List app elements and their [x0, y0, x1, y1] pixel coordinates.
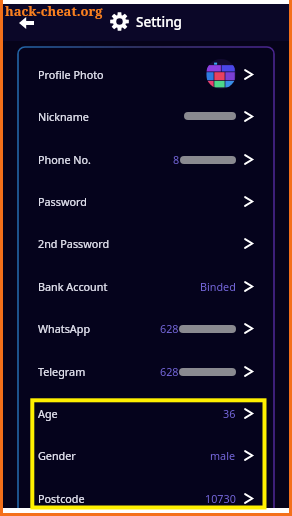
staticText: 628 [160, 321, 179, 336]
button[interactable]: Age [18, 392, 274, 434]
staticText: 10730 [205, 491, 236, 506]
button[interactable]: Password [18, 180, 274, 222]
staticText: Phone No. [38, 152, 91, 167]
button[interactable]: Nickname [18, 95, 274, 137]
button[interactable]: Phone No. [18, 138, 274, 180]
staticText: 628 [160, 364, 179, 379]
staticText: Setting [136, 13, 182, 31]
button[interactable]: Postcode [18, 477, 274, 508]
button[interactable]: Profile Photo [18, 53, 274, 95]
staticText: Telegram [38, 364, 86, 379]
staticText: Postcode [38, 491, 85, 506]
staticText: 36 [223, 406, 236, 421]
staticText: WhatsApp [38, 321, 91, 336]
button[interactable]: Bank Account [18, 265, 274, 307]
staticText: 8 [173, 152, 180, 167]
button[interactable]: Gender [18, 434, 274, 476]
button[interactable]: Telegram [18, 350, 274, 392]
staticText: Age [38, 406, 58, 421]
staticText: Password [38, 194, 87, 209]
staticText: Gender [38, 448, 76, 463]
button[interactable]: 2nd Password [18, 222, 274, 264]
staticText: Profile Photo [38, 67, 104, 82]
button[interactable]: Back [12, 9, 40, 37]
button[interactable]: WhatsApp [18, 307, 274, 349]
staticText: male [210, 448, 236, 463]
staticText: hack-cheat.org [5, 2, 103, 20]
staticText: 2nd Password [38, 236, 110, 251]
staticText: Nickname [38, 109, 89, 124]
staticText: Binded [200, 279, 236, 294]
staticText: Bank Account [38, 279, 108, 294]
